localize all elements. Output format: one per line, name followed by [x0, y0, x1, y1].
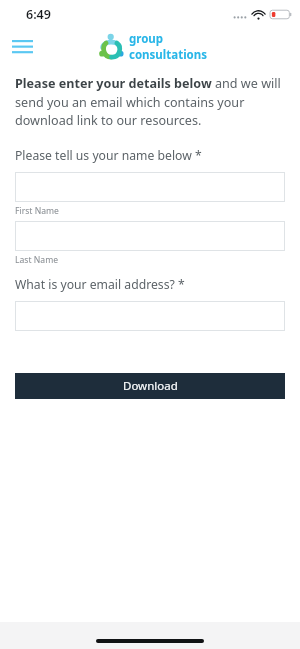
staticText: 6:49: [26, 6, 51, 23]
button[interactable]: Open navigation menu: [6, 32, 38, 62]
staticText: Download: [123, 378, 178, 394]
staticText: consultations: [129, 47, 208, 63]
button[interactable]: Text input field: [15, 301, 285, 331]
button[interactable]: Text input field: [15, 172, 285, 202]
staticText: First Name: [15, 205, 59, 217]
button[interactable]: Download: [15, 373, 285, 399]
button[interactable]: Text input field: [15, 221, 285, 251]
staticText: Please enter your details below and we w…: [15, 75, 285, 128]
staticText: Last Name: [15, 254, 59, 266]
staticText: What is your email address? *: [15, 276, 185, 293]
staticText: Please tell us your name below *: [15, 147, 202, 164]
staticText: group: [129, 31, 164, 47]
